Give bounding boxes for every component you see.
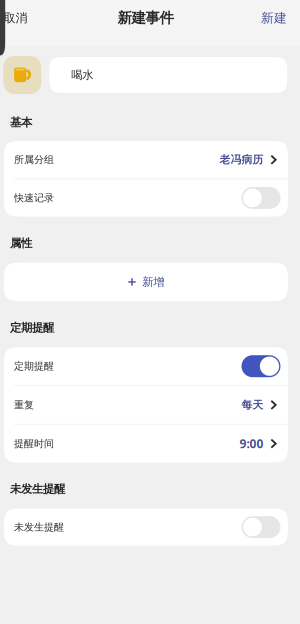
button[interactable]: 快速记录 [4, 179, 288, 217]
staticText: 未发生提醒 [10, 482, 65, 496]
button[interactable]: 取消 [0, 6, 33, 30]
button[interactable]: 所属分组 [4, 141, 288, 178]
staticText: 定期提醒 [14, 360, 54, 372]
staticText: 快速记录 [14, 192, 54, 204]
staticText: 基本 [10, 115, 32, 130]
staticText: 9:00 [240, 435, 264, 452]
staticText: 新建事件 [117, 9, 173, 27]
staticText: 每天 [242, 398, 264, 412]
button[interactable]: 重复 [4, 386, 288, 424]
button[interactable]: 新建 [255, 6, 291, 30]
staticText: 新建 [261, 10, 287, 26]
staticText: 重复 [14, 399, 34, 411]
staticText: 属性 [10, 236, 32, 250]
button[interactable]: 喝水 [49, 57, 287, 93]
staticText: 老冯病历 [220, 153, 264, 166]
button[interactable]: 提醒时间 [4, 425, 288, 463]
staticText: 新增 [142, 275, 164, 289]
button[interactable]: 新增 [4, 263, 288, 301]
staticText: 未发生提醒 [14, 521, 64, 533]
staticText: 所属分组 [14, 153, 54, 166]
button[interactable]: 定期提醒 [4, 347, 288, 385]
staticText: 取消 [3, 10, 27, 25]
staticText: 喝水 [71, 68, 93, 82]
staticText: 提醒时间 [14, 437, 54, 450]
button[interactable]: 未发生提醒 [4, 509, 288, 546]
staticText: 定期提醒 [10, 321, 54, 335]
